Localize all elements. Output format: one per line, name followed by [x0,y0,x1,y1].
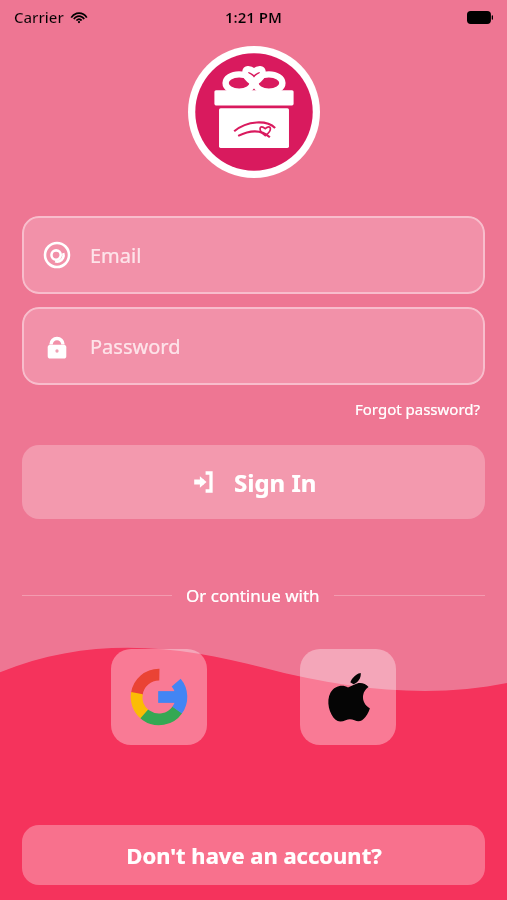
staticText: Email [90,242,142,269]
staticText: Forgot password? [355,399,481,419]
button[interactable]: Sign in with Apple [300,649,396,745]
staticText: Sign In [234,466,317,499]
button[interactable]: Sign in with Google [111,649,207,745]
button[interactable]: Password [22,307,485,385]
staticText: Or continue with [186,584,320,607]
staticText: 1:21 PM [225,7,282,27]
staticText: Carrier [14,7,64,27]
button[interactable]: Sign In [22,445,485,519]
button[interactable]: Don't have an account? [22,825,485,885]
staticText: Don't have an account? [126,840,382,870]
staticText: Password [90,333,181,360]
button[interactable]: Forgot password? [351,395,485,423]
button[interactable]: Email [22,216,485,294]
